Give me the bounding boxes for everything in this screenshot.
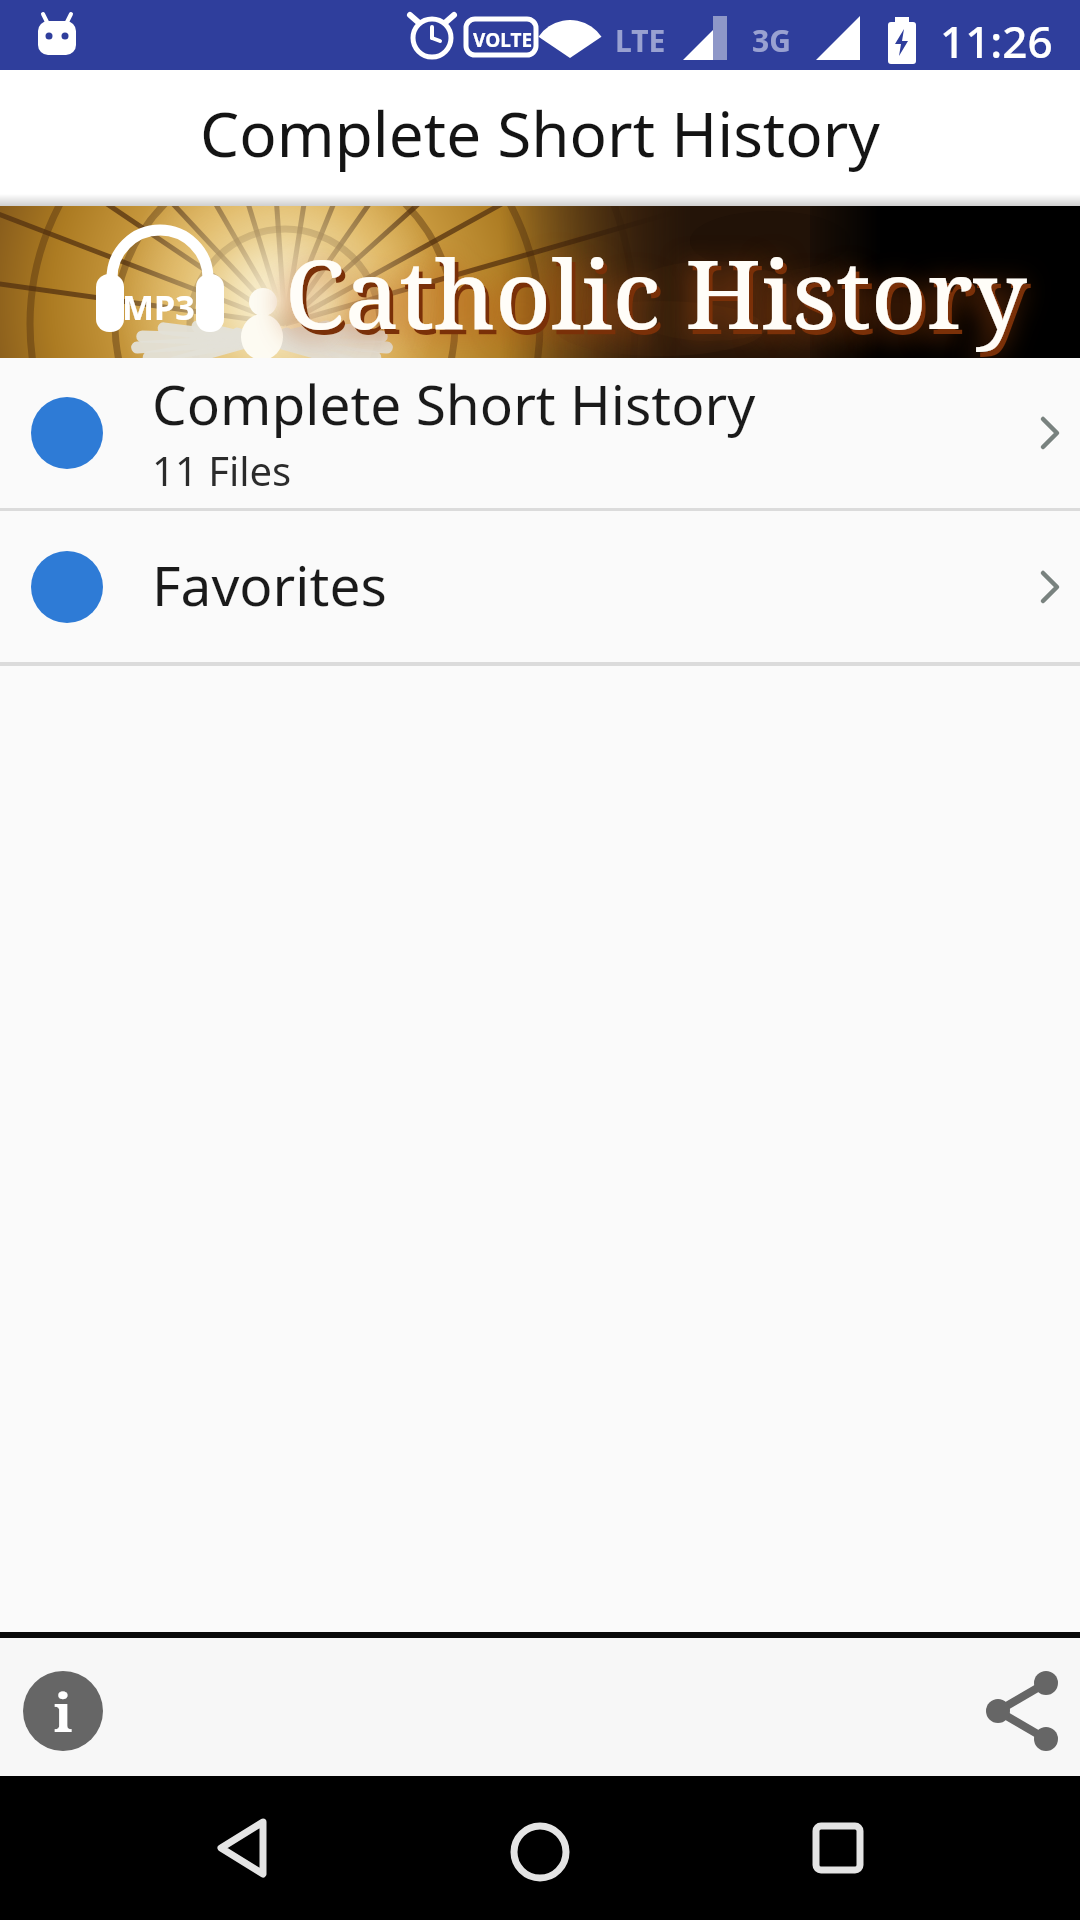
- staticText: 11:26: [940, 11, 1053, 71]
- staticText: Catholic History: [289, 232, 1031, 361]
- button[interactable]: Complete Short History: [0, 358, 1080, 508]
- button[interactable]: [986, 1673, 1062, 1749]
- staticText: MP3: [122, 284, 195, 330]
- button[interactable]: Favorites: [0, 511, 1080, 662]
- button[interactable]: [788, 1798, 888, 1898]
- staticText: i: [54, 1676, 73, 1747]
- staticText: Complete Short History: [200, 91, 880, 175]
- staticText: Catholic History: [285, 227, 1027, 356]
- staticText: 11 Files: [152, 443, 292, 497]
- button[interactable]: i: [23, 1671, 103, 1751]
- button[interactable]: [191, 1798, 291, 1898]
- button[interactable]: [490, 1802, 590, 1902]
- staticText: VOLTE: [473, 27, 533, 53]
- staticText: LTE: [615, 20, 666, 61]
- staticText: Complete Short History: [152, 366, 756, 441]
- staticText: Favorites: [152, 547, 387, 622]
- staticText: 3G: [752, 20, 791, 61]
